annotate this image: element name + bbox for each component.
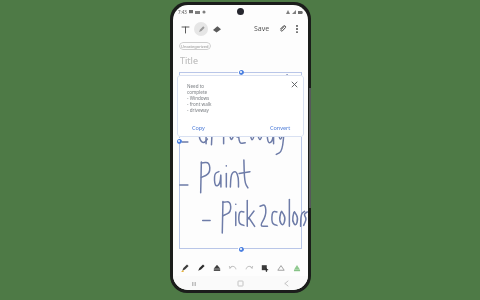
button[interactable]: Recents (189, 278, 200, 289)
button[interactable]: Highlighter (178, 261, 191, 274)
staticText: - Windows (187, 95, 210, 101)
button[interactable]: Convert (267, 123, 294, 132)
button[interactable]: Copy (189, 123, 208, 132)
button[interactable]: Attach (276, 22, 289, 35)
staticText: Title (180, 54, 198, 66)
button[interactable]: Select (258, 261, 271, 274)
button[interactable]: Home (235, 278, 246, 289)
staticText: 7:43 (178, 9, 187, 15)
button[interactable]: Undo (226, 261, 239, 274)
staticText: complete (187, 89, 208, 95)
button[interactable]: Redo (242, 261, 255, 274)
button[interactable]: More options (290, 22, 303, 35)
staticText: Uncategorized (181, 44, 209, 49)
button[interactable]: Color (290, 261, 303, 274)
button[interactable]: Text format (178, 22, 192, 36)
staticText: - front walk (187, 101, 212, 107)
button[interactable]: Eraser (210, 261, 223, 274)
button[interactable]: Eraser (210, 22, 224, 36)
staticText: Need to (187, 83, 205, 89)
staticText: Save (254, 24, 270, 34)
button[interactable]: Close (290, 80, 299, 89)
button[interactable]: Save (252, 23, 272, 35)
button[interactable]: Back (281, 278, 292, 289)
button[interactable]: Pen (194, 22, 208, 36)
staticText: Copy (192, 124, 205, 131)
staticText: - driveway (187, 107, 209, 113)
button[interactable]: Uncategorized (179, 42, 211, 50)
button[interactable]: Pen (194, 261, 207, 274)
button[interactable]: Shapes (274, 261, 287, 274)
staticText: Convert (270, 124, 291, 131)
